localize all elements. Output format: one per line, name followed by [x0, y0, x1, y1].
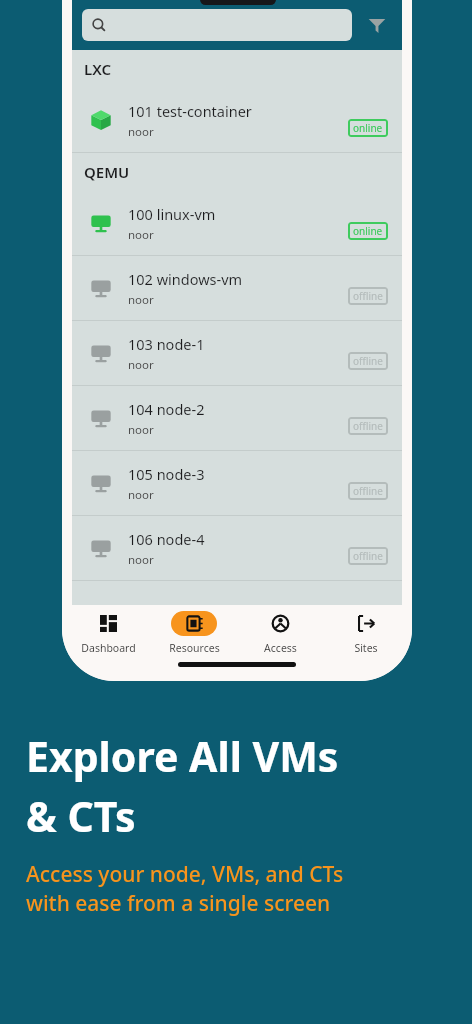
button[interactable]: Access: [240, 605, 320, 655]
staticText: noor: [128, 552, 154, 568]
staticText: offline: [353, 354, 383, 368]
staticText: & CTs: [26, 788, 136, 844]
staticText: Sites: [354, 641, 378, 655]
button[interactable]: Filter: [362, 10, 392, 40]
staticText: Resources: [169, 641, 220, 655]
staticText: LXC: [84, 59, 112, 79]
staticText: 102 windows-vm: [128, 269, 243, 289]
button[interactable]: 101 test-container: [72, 88, 402, 152]
button[interactable]: Resources: [154, 605, 234, 655]
staticText: noor: [128, 357, 154, 373]
button[interactable]: 100 linux-vm: [72, 191, 402, 255]
staticText: Explore All VMs: [26, 728, 339, 784]
button[interactable]: 103 node-1: [72, 321, 402, 385]
staticText: 103 node-1: [128, 334, 205, 354]
staticText: noor: [128, 292, 154, 308]
staticText: noor: [128, 487, 154, 503]
button[interactable]: Dashboard: [68, 605, 148, 655]
staticText: 100 linux-vm: [128, 204, 216, 224]
staticText: 104 node-2: [128, 399, 205, 419]
staticText: offline: [353, 419, 383, 433]
staticText: online: [353, 121, 383, 135]
staticText: offline: [353, 289, 383, 303]
staticText: Access your node, VMs, and CTs: [26, 860, 344, 889]
staticText: noor: [128, 124, 154, 140]
staticText: QEMU: [84, 162, 130, 182]
staticText: 105 node-3: [128, 464, 205, 484]
staticText: 106 node-4: [128, 529, 205, 549]
button[interactable]: 106 node-4: [72, 516, 402, 580]
staticText: online: [353, 224, 383, 238]
staticText: with ease from a single screen: [26, 889, 331, 918]
staticText: Access: [264, 641, 297, 655]
staticText: Dashboard: [81, 641, 136, 655]
staticText: offline: [353, 549, 383, 563]
button[interactable]: 105 node-3: [72, 451, 402, 515]
button[interactable]: [82, 9, 352, 41]
button[interactable]: 104 node-2: [72, 386, 402, 450]
staticText: offline: [353, 484, 383, 498]
button[interactable]: Sites: [326, 605, 406, 655]
staticText: noor: [128, 227, 154, 243]
staticText: 101 test-container: [128, 101, 252, 121]
button[interactable]: 102 windows-vm: [72, 256, 402, 320]
staticText: noor: [128, 422, 154, 438]
